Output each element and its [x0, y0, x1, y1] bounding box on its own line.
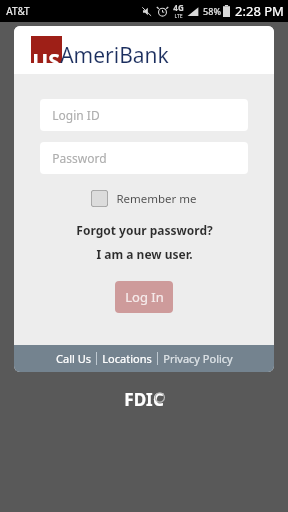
staticText: AT&T — [6, 4, 30, 18]
button[interactable]: Password — [40, 142, 248, 174]
staticText: LTE — [174, 13, 183, 20]
button[interactable]: Privacy Policy — [158, 348, 238, 369]
staticText: Call Us — [56, 351, 91, 366]
button[interactable]: Remember me — [87, 188, 201, 209]
staticText: AmeriBank — [60, 41, 169, 70]
button[interactable]: Log In — [115, 281, 173, 313]
staticText: 4G — [173, 2, 184, 13]
staticText: Log In — [125, 288, 164, 306]
button[interactable]: Forgot your password? — [70, 221, 219, 239]
staticText: Locations — [102, 351, 152, 366]
button[interactable]: Call Us — [51, 348, 96, 369]
staticText: 2:28 PM — [235, 2, 284, 20]
button[interactable]: Login ID — [40, 99, 248, 131]
other: FDIC insured — [118, 388, 170, 407]
staticText: Login ID — [52, 107, 100, 123]
staticText: Forgot your password? — [76, 222, 213, 238]
staticText: 58% — [203, 5, 221, 17]
staticText: Password — [52, 150, 107, 166]
staticText: Remember me — [116, 191, 197, 207]
staticText: I am a new user. — [96, 246, 193, 262]
staticText: C — [153, 388, 164, 407]
button[interactable]: I am a new user. — [90, 245, 199, 263]
staticText: FDI — [124, 388, 153, 407]
staticText: Privacy Policy — [163, 351, 233, 366]
button[interactable]: Locations — [97, 348, 157, 369]
staticText: US — [32, 47, 60, 76]
